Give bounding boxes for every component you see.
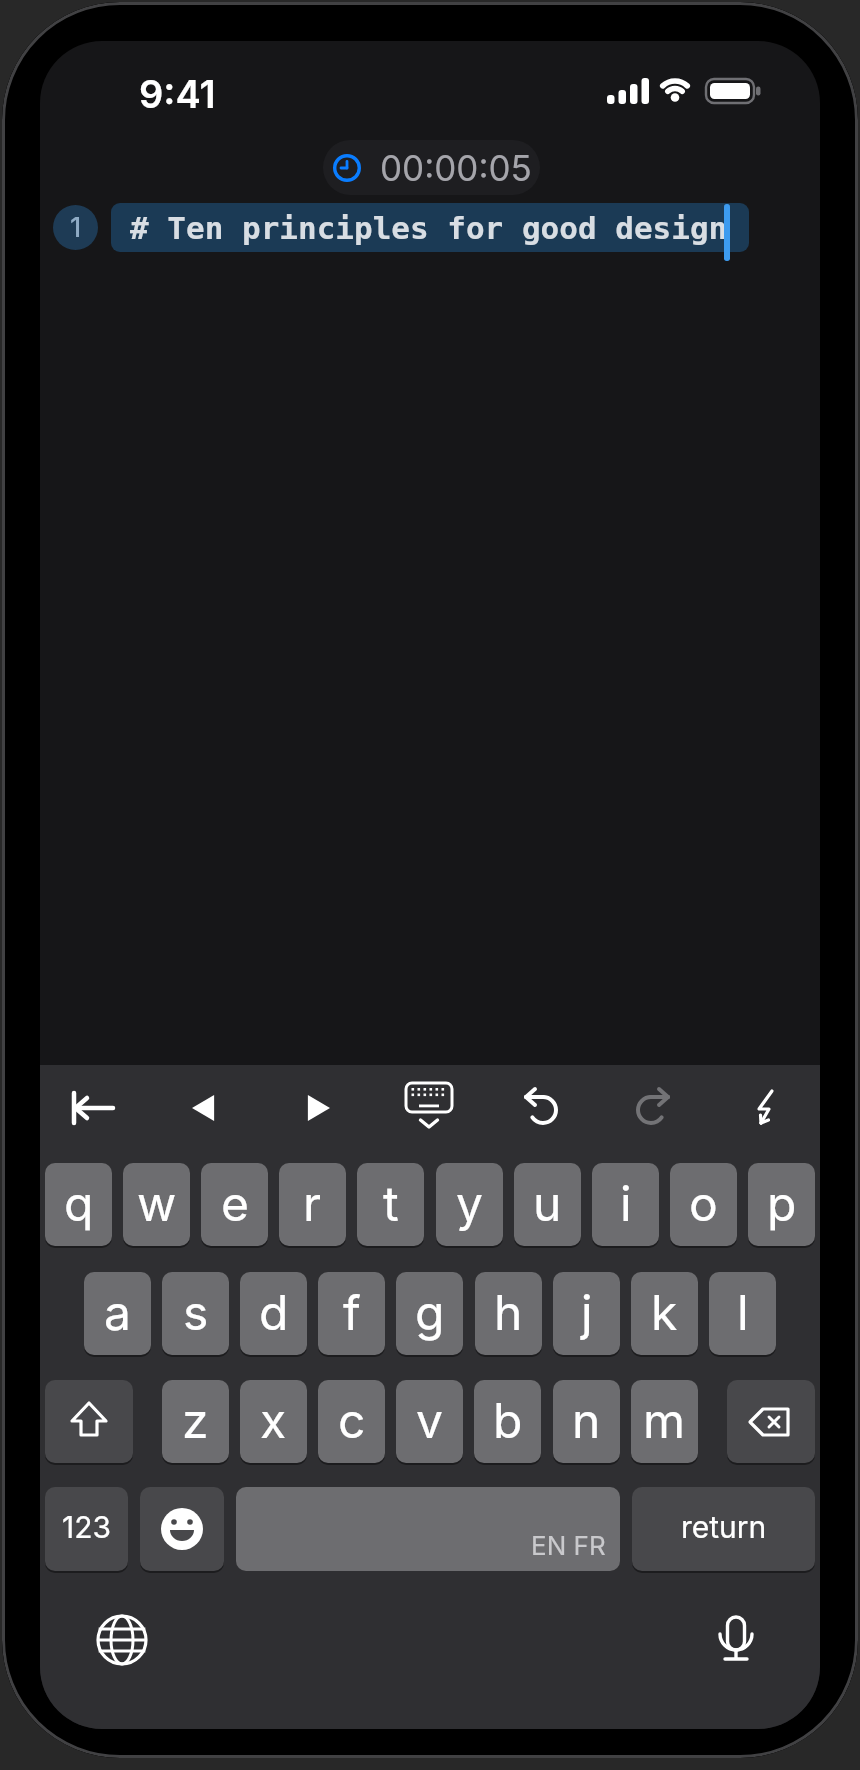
button[interactable] [389, 1073, 469, 1143]
staticText: h [494, 1283, 523, 1341]
button[interactable] [140, 1487, 224, 1571]
staticText: EN FR [531, 1530, 606, 1561]
button[interactable]: 00:00:05 [323, 140, 540, 195]
staticText: r [303, 1174, 322, 1232]
button[interactable]: f [318, 1272, 385, 1355]
button[interactable]: 123 [45, 1487, 128, 1571]
button[interactable]: k [631, 1272, 698, 1355]
staticText: c [338, 1391, 366, 1449]
button[interactable] [727, 1380, 815, 1463]
staticText: o [689, 1174, 718, 1232]
staticText: return [681, 1509, 767, 1545]
staticText: i [620, 1174, 632, 1232]
staticText: u [533, 1174, 562, 1232]
button[interactable]: i [592, 1163, 659, 1246]
staticText: a [104, 1283, 131, 1341]
button[interactable] [53, 1073, 133, 1143]
button[interactable]: n [553, 1380, 620, 1463]
staticText: g [415, 1283, 445, 1341]
staticText: n [572, 1391, 601, 1449]
button[interactable]: o [670, 1163, 737, 1246]
button[interactable]: v [396, 1380, 463, 1463]
button[interactable]: j [553, 1272, 620, 1355]
staticText: w [137, 1174, 177, 1232]
button[interactable]: EN FR [236, 1487, 620, 1571]
button[interactable]: y [436, 1163, 503, 1246]
staticText: v [416, 1391, 443, 1449]
staticText: l [737, 1283, 749, 1341]
button[interactable] [613, 1073, 693, 1143]
staticText: k [651, 1283, 678, 1341]
button[interactable]: e [201, 1163, 268, 1246]
button[interactable]: r [279, 1163, 346, 1246]
staticText: z [182, 1391, 209, 1449]
button[interactable] [277, 1073, 357, 1143]
staticText: 123 [62, 1509, 112, 1545]
button[interactable] [45, 1380, 133, 1463]
button[interactable]: c [318, 1380, 385, 1463]
staticText: 1 [70, 211, 82, 244]
staticText: 9:41 [139, 71, 216, 117]
staticText: x [260, 1391, 287, 1449]
button[interactable]: p [748, 1163, 815, 1246]
button[interactable]: x [240, 1380, 307, 1463]
button[interactable] [87, 1605, 157, 1675]
staticText: p [767, 1174, 797, 1232]
button[interactable]: w [123, 1163, 190, 1246]
button[interactable]: z [162, 1380, 229, 1463]
button[interactable] [701, 1605, 771, 1675]
button[interactable]: t [357, 1163, 424, 1246]
button[interactable]: a [84, 1272, 151, 1355]
staticText: # Ten principles for good design [130, 210, 728, 246]
button[interactable]: h [475, 1272, 542, 1355]
button[interactable] [165, 1073, 245, 1143]
button[interactable]: g [396, 1272, 463, 1355]
staticText: j [581, 1283, 593, 1341]
button[interactable] [725, 1073, 805, 1143]
staticText: d [259, 1283, 289, 1341]
staticText: f [343, 1283, 361, 1341]
staticText: b [493, 1391, 523, 1449]
staticText: m [643, 1391, 686, 1449]
button[interactable]: b [474, 1380, 541, 1463]
button[interactable]: s [162, 1272, 229, 1355]
button[interactable]: l [709, 1272, 776, 1355]
staticText: q [64, 1174, 94, 1232]
staticText: t [383, 1174, 399, 1232]
button[interactable] [501, 1073, 581, 1143]
button[interactable]: d [240, 1272, 307, 1355]
button[interactable]: return [632, 1487, 815, 1571]
button[interactable]: # Ten principles for good design [111, 203, 749, 252]
button[interactable]: u [514, 1163, 581, 1246]
staticText: e [221, 1174, 249, 1232]
staticText: y [456, 1174, 483, 1232]
button[interactable]: m [631, 1380, 698, 1463]
staticText: s [183, 1283, 209, 1341]
button[interactable]: q [45, 1163, 112, 1246]
staticText: 00:00:05 [380, 147, 532, 189]
